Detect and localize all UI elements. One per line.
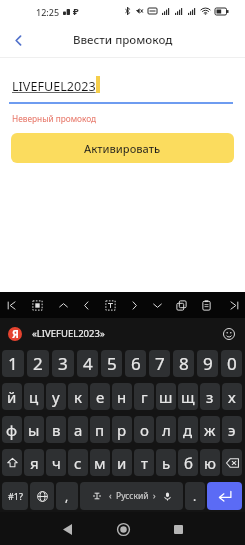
staticText: л: [162, 420, 171, 440]
staticText: ₽: [73, 5, 79, 18]
staticText: ф: [6, 420, 18, 440]
button[interactable]: з: [200, 383, 220, 410]
button[interactable]: Shift: [2, 449, 22, 476]
button[interactable]: о: [134, 416, 154, 443]
button[interactable]: 6: [125, 350, 146, 377]
staticText: 0: [227, 352, 237, 375]
staticText: б: [184, 453, 193, 473]
button[interactable]: Toolbar action 8: [170, 292, 192, 318]
staticText: 2: [33, 352, 43, 375]
button[interactable]: д: [178, 416, 198, 443]
staticText: э: [228, 420, 236, 440]
button[interactable]: Back: [54, 516, 80, 542]
button[interactable]: Toolbar action 5: [99, 292, 121, 318]
button[interactable]: «LIVEFUEL2023»: [32, 327, 105, 340]
button[interactable]: 2: [27, 350, 49, 377]
button[interactable]: ,: [56, 482, 78, 510]
button[interactable]: ц: [24, 383, 44, 410]
button[interactable]: й: [2, 383, 22, 410]
staticText: е: [96, 387, 105, 407]
button[interactable]: Toolbar action 7: [146, 292, 168, 318]
button[interactable]: 4: [77, 350, 98, 377]
button[interactable]: п: [90, 416, 110, 443]
button[interactable]: Change language: [30, 482, 54, 510]
button[interactable]: м: [90, 449, 110, 476]
button[interactable]: 1: [2, 350, 24, 377]
button[interactable]: х: [222, 383, 242, 410]
staticText: Активировать: [84, 141, 161, 156]
staticText: р: [117, 420, 127, 440]
staticText: о: [140, 420, 149, 440]
button[interactable]: р: [112, 416, 132, 443]
button[interactable]: б: [178, 449, 198, 476]
button[interactable]: э: [222, 416, 242, 443]
button[interactable]: 8: [173, 350, 194, 377]
button[interactable]: ч: [46, 449, 66, 476]
button[interactable]: 0: [221, 350, 242, 377]
button[interactable]: г: [134, 383, 154, 410]
button[interactable]: Enter: [207, 482, 242, 510]
staticText: й: [7, 387, 17, 407]
staticText: т: [141, 453, 148, 473]
staticText: 8: [179, 352, 189, 375]
button[interactable]: и: [112, 449, 132, 476]
staticText: ш: [159, 387, 173, 407]
button[interactable]: ш: [156, 383, 176, 410]
button[interactable]: .: [185, 482, 205, 510]
button[interactable]: 3: [52, 350, 74, 377]
staticText: 1: [8, 352, 18, 375]
staticText: 3: [58, 352, 68, 375]
button[interactable]: Yandex: [8, 327, 22, 341]
staticText: ы: [28, 420, 40, 440]
button[interactable]: 9: [197, 350, 218, 377]
button[interactable]: Back: [4, 26, 32, 54]
button[interactable]: ж: [200, 416, 220, 443]
button[interactable]: Активировать: [11, 133, 234, 163]
staticText: а: [74, 420, 83, 440]
button[interactable]: е: [90, 383, 110, 410]
staticText: щ: [181, 387, 195, 407]
staticText: 12:25: [36, 6, 60, 18]
staticText: п: [95, 420, 105, 440]
button[interactable]: Toolbar action 3: [52, 292, 74, 318]
button[interactable]: Toolbar action 10: [223, 292, 245, 318]
button[interactable]: Home: [110, 516, 136, 542]
button[interactable]: у: [46, 383, 66, 410]
button[interactable]: в: [46, 416, 66, 443]
button[interactable]: 5: [101, 350, 122, 377]
button[interactable]: т: [134, 449, 154, 476]
button[interactable]: к: [68, 383, 88, 410]
staticText: LIVEFUEL2023: [12, 78, 96, 95]
staticText: к: [74, 387, 82, 407]
staticText: м: [94, 453, 106, 473]
button[interactable]: а: [68, 416, 88, 443]
button[interactable]: щ: [178, 383, 198, 410]
button[interactable]: Toolbar action 4: [75, 292, 97, 318]
button[interactable]: Emoji: [219, 324, 239, 344]
button[interactable]: 7: [149, 350, 170, 377]
button[interactable]: ‹ Русский ›: [80, 482, 183, 510]
staticText: в: [52, 420, 61, 440]
button[interactable]: ь: [156, 449, 176, 476]
staticText: з: [206, 387, 214, 407]
staticText: н: [117, 387, 127, 407]
button[interactable]: ю: [200, 449, 220, 476]
button[interactable]: ф: [2, 416, 22, 443]
button[interactable]: л: [156, 416, 176, 443]
staticText: .: [193, 488, 197, 504]
button[interactable]: Toolbar action 9: [195, 292, 217, 318]
staticText: ь: [162, 453, 171, 473]
button[interactable]: я: [24, 449, 44, 476]
button[interactable]: Toolbar action 2: [26, 292, 48, 318]
button[interactable]: Toolbar action 6: [123, 292, 145, 318]
button[interactable]: #1?: [2, 482, 28, 510]
button[interactable]: Backspace: [222, 449, 242, 476]
button[interactable]: ы: [24, 416, 44, 443]
button[interactable]: с: [68, 449, 88, 476]
button[interactable]: Toolbar action 1: [0, 292, 22, 318]
staticText: ,: [65, 488, 69, 504]
button[interactable]: Recents: [165, 516, 191, 542]
staticText: #1?: [8, 490, 23, 502]
button[interactable]: н: [112, 383, 132, 410]
staticText: «LIVEFUEL2023»: [32, 327, 105, 340]
